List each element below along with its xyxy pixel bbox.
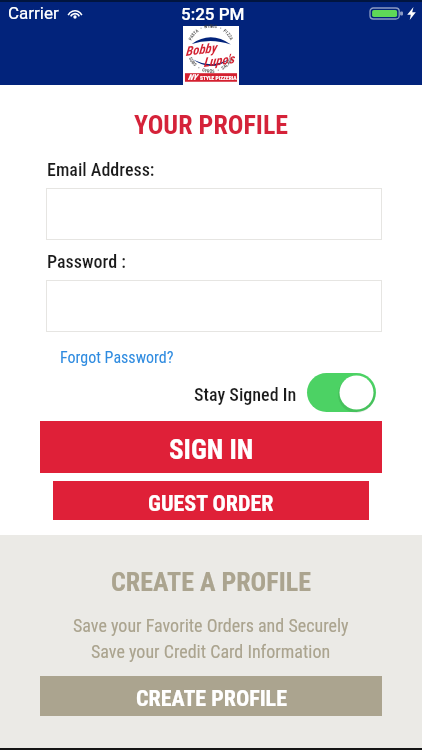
staticText: YOUR PROFILE bbox=[0, 110, 422, 140]
staticText: 5:25 PM bbox=[181, 4, 245, 24]
staticText: Forgot Password? bbox=[60, 348, 174, 367]
staticText: Password : bbox=[47, 251, 126, 272]
button[interactable]: Email Address input bbox=[46, 188, 382, 240]
staticText: CREATE A PROFILE bbox=[111, 567, 311, 597]
button[interactable]: Password input bbox=[46, 280, 382, 332]
staticText: STYLE PIZZERIA bbox=[200, 75, 237, 81]
staticText: Bobby bbox=[184, 40, 218, 59]
staticText: Email Address: bbox=[47, 159, 155, 180]
staticText: CREATE PROFILE bbox=[136, 686, 287, 712]
button[interactable]: Stay Signed In toggle bbox=[307, 373, 376, 412]
staticText: GUEST ORDER bbox=[148, 491, 274, 517]
staticText: Lupo's bbox=[202, 51, 236, 70]
staticText: Save your Favorite Orders and Securely bbox=[73, 615, 349, 636]
button[interactable]: CREATE PROFILE bbox=[40, 676, 382, 716]
button[interactable]: SIGN IN bbox=[40, 421, 382, 473]
button[interactable]: GUEST ORDER bbox=[53, 481, 369, 520]
staticText: SIGN IN bbox=[169, 434, 254, 466]
staticText: NY bbox=[188, 73, 197, 82]
staticText: Carrier bbox=[8, 3, 59, 23]
staticText: Save your Credit Card Information bbox=[91, 641, 331, 662]
button[interactable]: Forgot Password? bbox=[52, 344, 182, 371]
staticText: Stay Signed In bbox=[194, 384, 297, 405]
